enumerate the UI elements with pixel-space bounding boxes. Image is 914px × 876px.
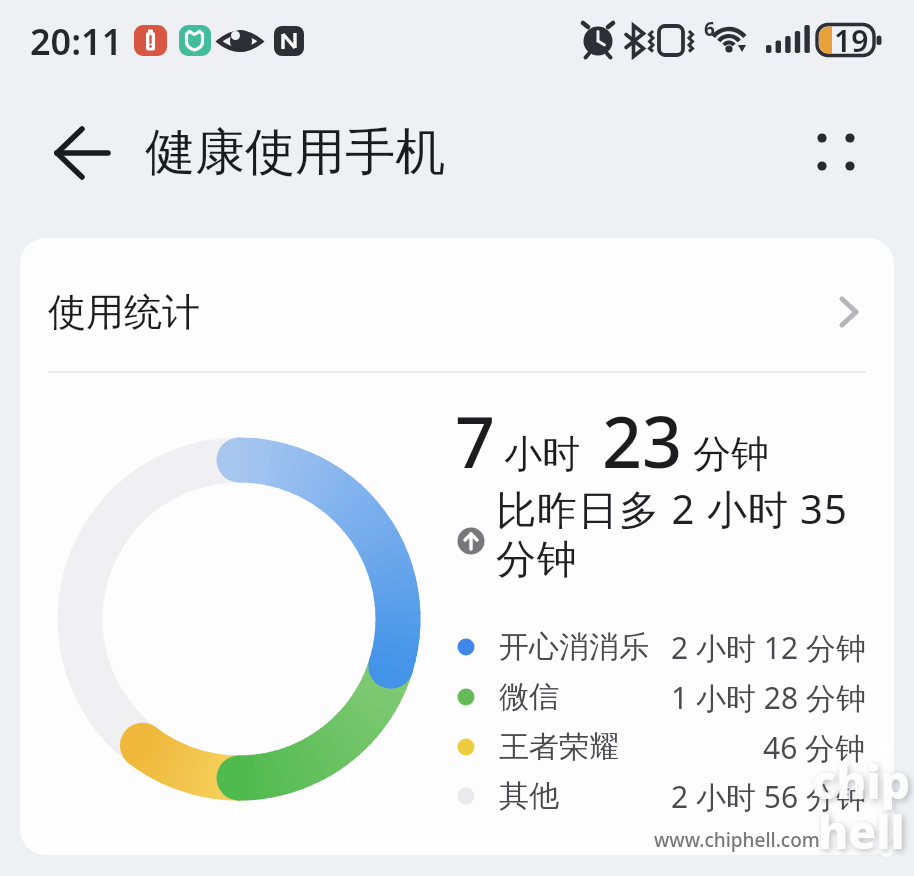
staticText: 2 小时 12 分钟 xyxy=(671,627,866,668)
staticText: 微信 xyxy=(499,678,559,716)
button[interactable] xyxy=(800,118,872,188)
button[interactable]: 使用统计 xyxy=(48,272,200,352)
staticText: 1 小时 28 分钟 xyxy=(671,677,866,718)
staticText: www.chiphell.com xyxy=(654,827,820,853)
staticText: 19 xyxy=(834,20,869,61)
staticText: 使用统计 xyxy=(48,288,200,336)
staticText: 6 xyxy=(704,16,715,42)
staticText: 2 小时 56 分钟 xyxy=(671,776,866,817)
staticText: hell xyxy=(818,800,905,863)
staticText: 7 xyxy=(455,393,496,488)
staticText: 王者荣耀 xyxy=(499,728,619,766)
staticText: 开心消消乐 xyxy=(499,628,649,666)
staticText: 46 分钟 xyxy=(763,727,866,768)
staticText: 健康使用手机 xyxy=(145,121,445,184)
staticText: 小时 xyxy=(504,430,580,478)
staticText: 比昨日多 2 小时 35 分钟 xyxy=(496,481,848,585)
button[interactable] xyxy=(20,238,894,372)
staticText: 其他 xyxy=(499,777,559,815)
button[interactable] xyxy=(40,118,126,188)
staticText: 20:11 xyxy=(30,17,123,66)
staticText: 分钟 xyxy=(693,430,769,478)
staticText: chip xyxy=(812,750,911,813)
staticText: 23 xyxy=(602,393,683,488)
